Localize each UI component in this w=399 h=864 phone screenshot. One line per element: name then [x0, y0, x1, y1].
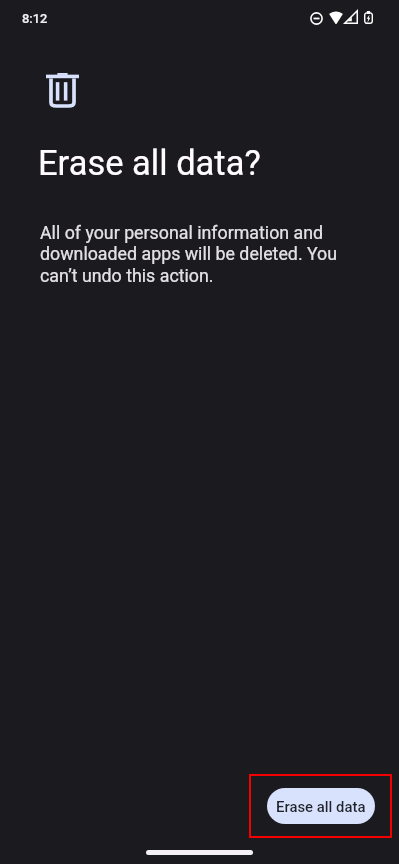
- other: Do not disturb on: [310, 12, 323, 25]
- button[interactable]: Erase all data: [267, 788, 375, 824]
- staticText: 8:12: [22, 11, 48, 26]
- staticText: Erase all data?: [38, 143, 261, 183]
- other: Erase data: [46, 73, 79, 108]
- staticText: All of your personal information and dow…: [40, 222, 345, 287]
- staticText: Erase all data: [276, 798, 366, 815]
- other: Battery charging: [364, 11, 373, 24]
- other: Mobile signal: [344, 10, 358, 24]
- other: Wi-Fi: [329, 11, 343, 24]
